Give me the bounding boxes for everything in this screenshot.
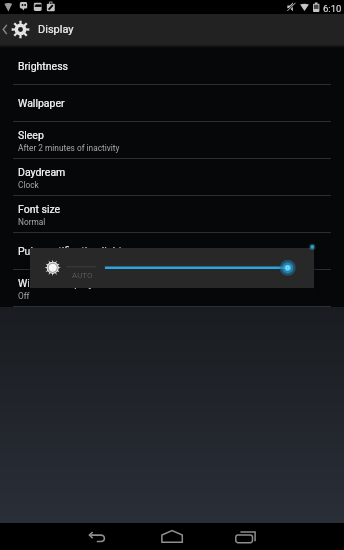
staticText: Display xyxy=(38,23,74,36)
button[interactable]: Daydream xyxy=(0,159,344,196)
button[interactable]: Wallpaper xyxy=(0,85,344,122)
staticText: Off xyxy=(18,291,30,301)
staticText: 6:10 xyxy=(323,3,342,14)
staticText: Sleep xyxy=(18,129,44,141)
staticText: Pulse notification light xyxy=(18,245,122,257)
button[interactable]: Navigate up xyxy=(0,14,344,45)
button[interactable]: Font size xyxy=(0,196,344,233)
button[interactable]: Brightness xyxy=(30,248,314,288)
staticText: Brightness xyxy=(18,60,68,72)
staticText: Normal xyxy=(18,217,46,227)
button[interactable]: Home xyxy=(136,523,209,550)
button[interactable]: Brightness xyxy=(0,48,344,85)
staticText: Font size xyxy=(18,203,61,215)
staticText: Wireless display xyxy=(18,277,94,289)
staticText: AUTO xyxy=(72,271,93,280)
button[interactable]: Wireless display xyxy=(0,270,344,307)
button[interactable]: Sleep xyxy=(0,122,344,159)
staticText: After 2 minutes of inactivity xyxy=(18,143,120,153)
staticText: Clock xyxy=(18,180,39,190)
staticText: Wallpaper xyxy=(18,97,65,109)
button[interactable]: Pulse notification light xyxy=(0,233,344,270)
button[interactable]: Back xyxy=(0,523,136,550)
staticText: Daydream xyxy=(18,166,66,178)
button[interactable]: Recent apps xyxy=(209,523,344,550)
